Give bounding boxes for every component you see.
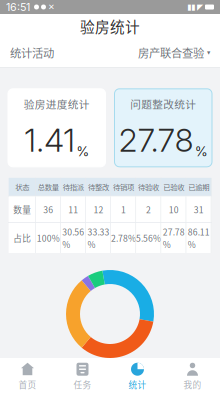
staticText: 待指派 [63,181,84,192]
staticText: ◤ [197,2,203,12]
staticText: ✕ [48,2,55,12]
button[interactable]: 房产联合查验 [138,44,210,61]
staticText: 11 [68,203,78,216]
staticText: 统计 [128,378,146,391]
staticText: 36 [43,203,53,216]
staticText: 86.11 % [188,225,210,251]
staticText: % [76,143,89,159]
staticText: 验房统计 [80,15,140,37]
staticText: 10 [169,203,179,216]
staticText: 任务 [73,378,91,391]
staticText: 待验收 [138,181,159,192]
staticText: 问题整改统计 [130,96,196,112]
staticText: 已验收 [163,181,184,192]
staticText: 验房进度统计 [24,96,90,112]
staticText: 33.33 % [87,225,109,251]
staticText: 31 [194,203,204,216]
staticText: 状态 [15,181,29,192]
staticText: 已逾期 [188,181,209,192]
button[interactable]: 统计 [110,358,165,395]
staticText: 100% [37,232,60,244]
staticText: ▮▮ [187,2,195,12]
staticText: 待销项 [113,181,134,192]
staticText: 我的 [183,378,201,391]
staticText: % [195,143,208,159]
staticText: 总数量 [38,181,59,192]
staticText: 5.56% [136,232,161,244]
staticText: 数量 [13,203,31,216]
staticText: 房产联合查验 [138,44,204,61]
staticText: 27.78 % [163,225,185,251]
staticText: ▾ [207,49,210,56]
staticText: 待整改 [88,181,109,192]
staticText: 27.78 [119,121,194,159]
staticText: 1 [121,203,126,216]
staticText: 首页 [18,378,36,391]
button[interactable]: 我的 [165,358,220,395]
staticText: 16:51 [6,0,30,13]
button[interactable]: 首页 [0,358,55,395]
staticText: 12 [93,203,103,216]
staticText: 30.56 % [62,225,84,251]
staticText: 2.78% [111,232,136,244]
staticText: 1.41 [24,121,75,159]
button[interactable]: 任务 [55,358,110,395]
staticText: 2 [146,203,151,216]
staticText: 占比 [13,232,31,244]
staticText: 统计活动 [10,44,54,61]
